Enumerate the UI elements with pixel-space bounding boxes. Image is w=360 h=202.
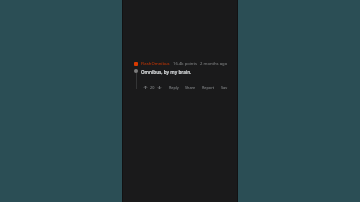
button[interactable]: Reply (168, 84, 180, 91)
button[interactable]: Upvote (141, 84, 164, 91)
button[interactable]: Save (220, 84, 230, 91)
staticText: Report (202, 85, 215, 90)
staticText: FlashOmnibus (141, 61, 170, 67)
button[interactable]: Share (184, 84, 197, 91)
staticText: Reply (169, 85, 179, 90)
button[interactable]: Upvote (143, 85, 148, 90)
staticText: Save (221, 85, 229, 90)
button[interactable]: Downvote (157, 85, 162, 90)
staticText: Share (185, 85, 196, 90)
button[interactable]: Report (201, 84, 216, 91)
staticText: 2 months ago (200, 61, 228, 67)
staticText: Omnibus, by my brain. (141, 69, 192, 75)
staticText: 20 (150, 85, 155, 90)
staticText: 16.4k points (173, 61, 197, 67)
